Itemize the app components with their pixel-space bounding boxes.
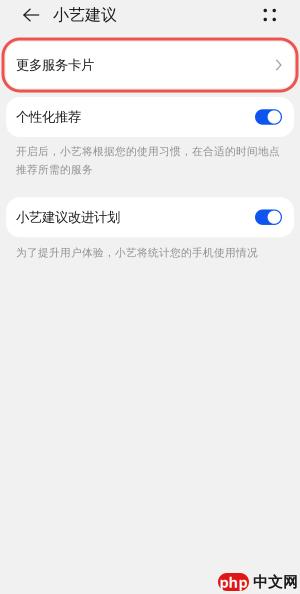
- staticText: 更多服务卡片: [16, 57, 94, 73]
- staticText: 为了提升用户体验，小艺将统计您的手机使用情况: [16, 246, 258, 259]
- button[interactable]: 个性化推荐: [6, 97, 294, 137]
- staticText: 推荐所需的服务: [16, 163, 93, 176]
- staticText: 小艺建议改进计划: [16, 209, 120, 225]
- button[interactable]: 小艺建议: [53, 1, 117, 29]
- button[interactable]: More options: [263, 1, 300, 29]
- staticText: php: [219, 572, 247, 592]
- button[interactable]: 小艺建议改进计划: [6, 197, 294, 237]
- button[interactable]: Back: [0, 1, 53, 29]
- staticText: 小艺建议: [53, 5, 117, 25]
- staticText: 个性化推荐: [16, 109, 81, 125]
- button[interactable]: 更多服务卡片: [3, 39, 297, 91]
- staticText: 中文网: [253, 573, 298, 591]
- staticText: 开启后，小艺将根据您的使用习惯，在合适的时间地点: [16, 145, 280, 158]
